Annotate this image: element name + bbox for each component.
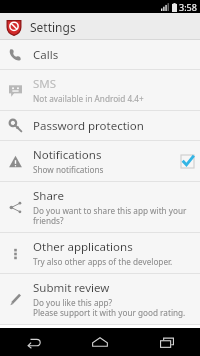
staticText: Do you like this app? Please support it … [33, 297, 186, 318]
staticText: Share [33, 188, 64, 204]
staticText: 3:58 [179, 1, 197, 13]
staticText: SMS [33, 76, 57, 92]
button[interactable]: Notifications [0, 141, 200, 181]
button[interactable]: SMS [0, 70, 200, 110]
button[interactable]: Other applications [0, 233, 200, 273]
staticText: Show notifications [33, 164, 104, 175]
staticText: Password protection [33, 118, 144, 134]
staticText: Calls [33, 47, 59, 63]
button[interactable]: Calls [0, 40, 200, 69]
staticText: Notifications [33, 147, 102, 163]
button[interactable]: Back [0, 328, 66, 356]
staticText: Do you want to share this app with your … [33, 205, 187, 226]
staticText: Not available in Android 4.4+ [33, 93, 144, 104]
staticText: Try also other apps of the developer. [33, 256, 173, 267]
staticText: Settings [30, 19, 76, 35]
button[interactable]: Show notifications toggle [181, 155, 194, 168]
button[interactable]: Submit review [0, 274, 200, 324]
button[interactable]: Home [66, 328, 133, 356]
button[interactable]: Share [0, 182, 200, 232]
button[interactable]: Recent apps [133, 328, 200, 356]
staticText: Submit review [33, 280, 110, 296]
button[interactable]: Password protection [0, 111, 200, 140]
staticText: Other applications [33, 239, 133, 255]
